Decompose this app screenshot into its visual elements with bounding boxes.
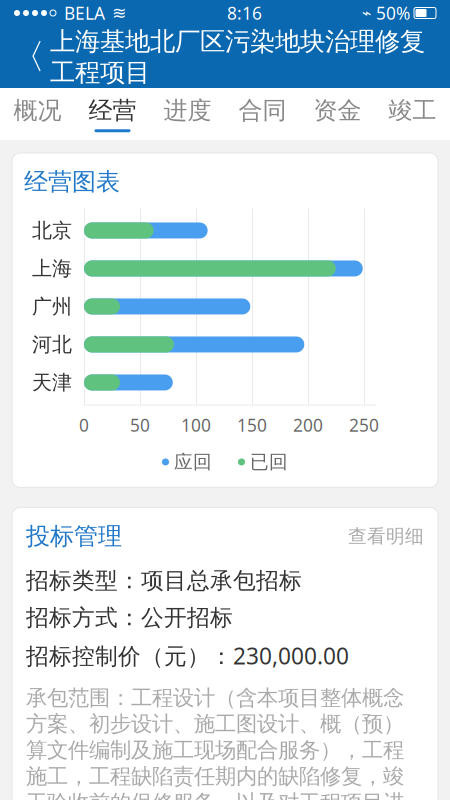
staticText: 100 (181, 413, 211, 436)
staticText: 进度 (163, 96, 211, 125)
staticText: 0 (79, 413, 89, 436)
staticText: 查看明细 (348, 525, 424, 548)
staticText: 概况 (13, 96, 61, 125)
staticText: 资金 (313, 96, 361, 125)
button[interactable]: 竣工 (375, 88, 450, 140)
button[interactable]: Back (6, 35, 50, 79)
staticText: 应回 (174, 450, 212, 473)
button[interactable]: 查看明细 (348, 525, 424, 548)
staticText: ≋ (112, 3, 127, 23)
staticText: 河北 (32, 332, 72, 357)
staticText: ⌁ (362, 4, 372, 22)
staticText: 竣工 (388, 96, 436, 125)
staticText: 招标方式：公开招标 (26, 604, 233, 631)
button[interactable]: 合同 (225, 88, 300, 140)
staticText: 合同 (238, 96, 286, 125)
staticText: 250 (349, 413, 379, 436)
staticText: 广州 (32, 294, 72, 319)
button[interactable]: 进度 (150, 88, 225, 140)
staticText: BELA (64, 1, 105, 24)
staticText: 承包范围：工程设计（含本项目整体概念方案、初步设计、施工图设计、概（预）算文件编… (26, 685, 404, 800)
staticText: 已回 (250, 450, 288, 473)
staticText: 天津 (32, 370, 72, 395)
staticText: 150 (237, 413, 267, 436)
staticText: 8:16 (227, 1, 262, 24)
button[interactable]: 概况 (0, 88, 75, 140)
staticText: 〈 (10, 36, 45, 78)
staticText: 200 (293, 413, 323, 436)
staticText: 招标控制价（元）：230,000.00 (26, 641, 349, 671)
button[interactable]: 经营 (75, 88, 150, 140)
button[interactable]: 资金 (300, 88, 375, 140)
staticText: 北京 (32, 218, 72, 243)
staticText: 上海 (32, 256, 72, 281)
staticText: 50 (130, 413, 150, 436)
staticText: 投标管理 (26, 521, 122, 551)
staticText: 50% (376, 1, 410, 24)
staticText: 经营图表 (24, 167, 120, 196)
staticText: 上海基地北厂区污染地块治理修复工程项目 (50, 26, 425, 88)
staticText: 经营 (88, 96, 136, 125)
staticText: 招标类型：项目总承包招标 (26, 567, 302, 595)
